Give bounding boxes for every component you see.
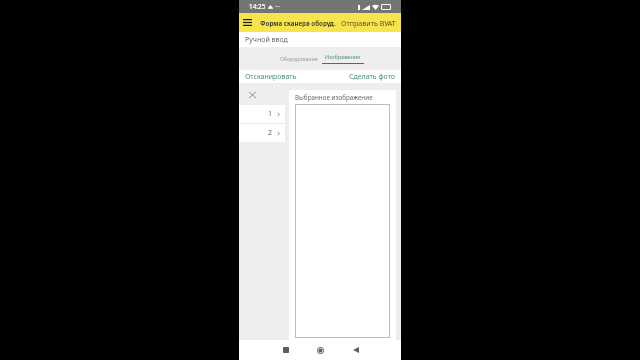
- button[interactable]: Оборудование: [277, 52, 322, 65]
- button[interactable]: Отсканировать: [239, 70, 303, 83]
- button[interactable]: Сделать фото: [343, 70, 401, 83]
- button[interactable]: Recents: [271, 340, 300, 360]
- staticText: 1: [268, 109, 273, 119]
- button[interactable]: 1: [239, 105, 285, 123]
- button[interactable]: 2: [239, 124, 285, 142]
- staticText: Форма сканера оборуд…: [260, 19, 336, 27]
- staticText: Отправить ВУАТ: [341, 18, 396, 28]
- button[interactable]: Close: [239, 83, 264, 105]
- button[interactable]: Back: [341, 340, 370, 360]
- staticText: Изображение: [325, 53, 361, 60]
- staticText: Оборудование: [280, 55, 318, 62]
- button[interactable]: Изображение: [322, 53, 364, 64]
- staticText: 2: [268, 128, 273, 138]
- staticText: 14:25: [249, 2, 266, 11]
- staticText: Отсканировать: [245, 72, 297, 81]
- staticText: Сделать фото: [349, 72, 395, 81]
- button[interactable]: Home: [306, 340, 335, 360]
- staticText: Выбранное изображение: [295, 93, 373, 102]
- staticText: Ручной ввод: [245, 35, 288, 45]
- button[interactable]: Menu: [239, 13, 255, 32]
- button[interactable]: Отправить ВУАТ: [336, 15, 401, 31]
